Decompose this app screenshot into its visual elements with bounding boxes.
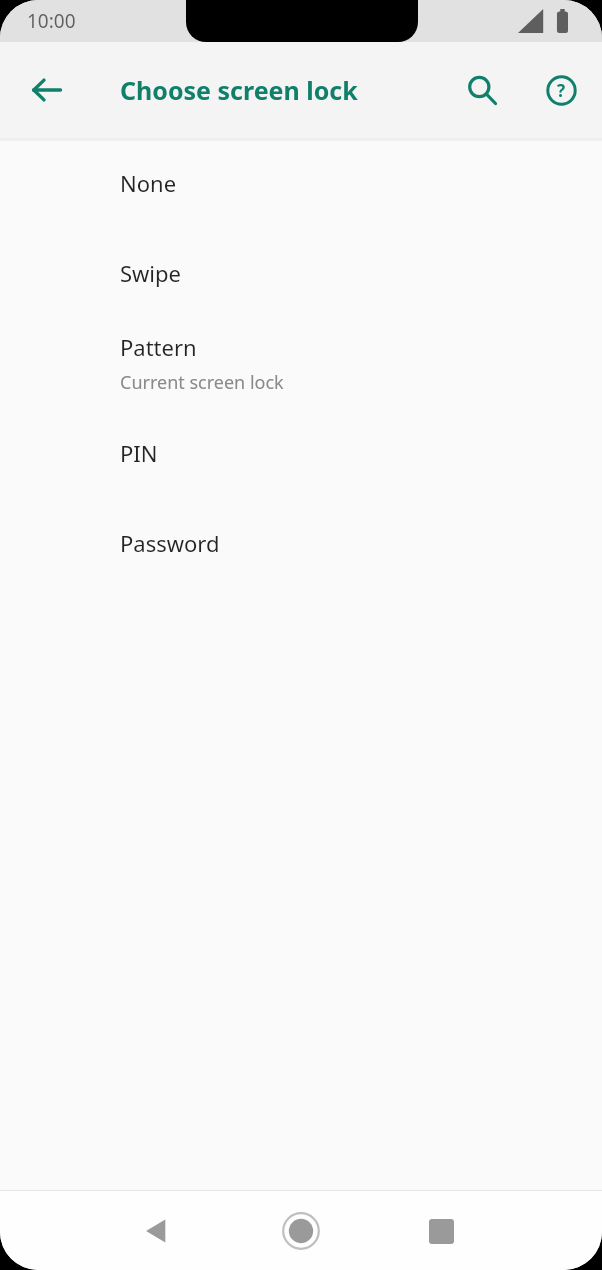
button[interactable]: Home	[271, 1201, 331, 1261]
button[interactable]: Search	[452, 60, 512, 120]
staticText: Current screen lock	[120, 370, 284, 395]
button[interactable]: PIN	[0, 408, 602, 498]
button[interactable]: None	[0, 138, 602, 228]
staticText: ?	[557, 79, 566, 102]
button[interactable]: Back	[127, 1201, 187, 1261]
button[interactable]: Recents	[411, 1201, 471, 1261]
button[interactable]: Pattern	[0, 318, 602, 408]
staticText: Password	[120, 528, 220, 558]
staticText: None	[120, 168, 177, 198]
staticText: Choose screen lock	[120, 73, 358, 107]
staticText: PIN	[120, 438, 158, 468]
button[interactable]: Swipe	[0, 228, 602, 318]
button[interactable]: Help	[531, 60, 591, 120]
staticText: 10:00	[27, 8, 76, 34]
button[interactable]: Back	[17, 60, 77, 120]
staticText: Pattern	[120, 332, 197, 362]
staticText: Swipe	[120, 258, 181, 288]
button[interactable]: Password	[0, 498, 602, 588]
